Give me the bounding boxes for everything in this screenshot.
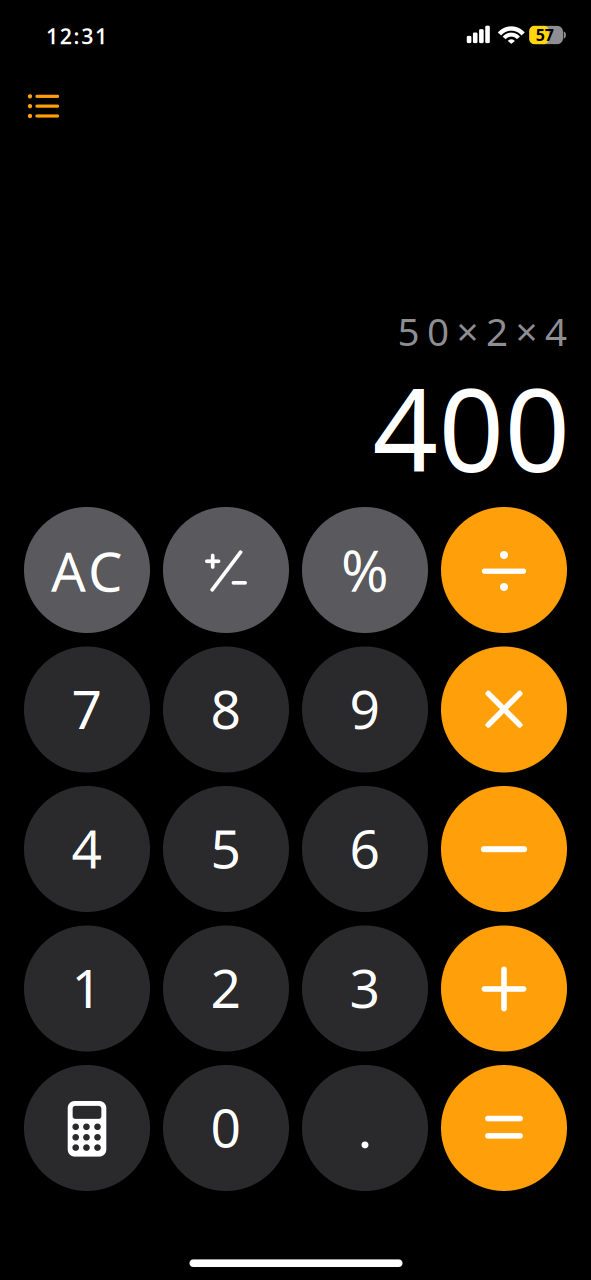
button[interactable]: 0	[163, 1065, 289, 1191]
staticText: 8	[210, 672, 241, 744]
staticText: 5	[210, 811, 241, 884]
staticText: 400	[372, 349, 570, 506]
staticText: 0	[210, 1090, 241, 1163]
button[interactable]: 2	[163, 925, 289, 1051]
staticText: 12:31	[46, 21, 107, 51]
button[interactable]: 7	[24, 646, 150, 772]
button[interactable]: 9	[302, 646, 428, 772]
button[interactable]: 3	[302, 925, 428, 1051]
button[interactable]: Multiply	[441, 646, 567, 772]
button[interactable]: Plus	[441, 925, 567, 1051]
staticText: AC	[51, 533, 123, 608]
button[interactable]: Equals	[441, 1065, 567, 1191]
staticText: %	[341, 530, 389, 608]
staticText: 1	[71, 951, 102, 1023]
staticText: 6	[349, 811, 380, 884]
button[interactable]: Divide	[441, 507, 567, 633]
staticText: 4	[71, 811, 102, 884]
button[interactable]: 6	[302, 786, 428, 912]
staticText: 57	[536, 24, 554, 46]
staticText: 7	[71, 672, 102, 744]
staticText: 9	[349, 672, 380, 744]
button[interactable]: Calculator	[24, 1065, 150, 1191]
button[interactable]: Plus or minus	[163, 507, 289, 633]
button[interactable]: %	[302, 507, 428, 633]
staticText: 50×2×4	[397, 305, 567, 357]
button[interactable]: AC	[24, 507, 150, 633]
button[interactable]: 5	[163, 786, 289, 912]
button[interactable]: 8	[163, 646, 289, 772]
staticText: 2	[210, 951, 241, 1023]
button[interactable]: 1	[24, 925, 150, 1051]
button[interactable]: History	[11, 77, 75, 135]
button[interactable]: Decimal point	[302, 1065, 428, 1191]
button[interactable]: 4	[24, 786, 150, 912]
staticText: 3	[349, 951, 380, 1023]
button[interactable]: Minus	[441, 786, 567, 912]
